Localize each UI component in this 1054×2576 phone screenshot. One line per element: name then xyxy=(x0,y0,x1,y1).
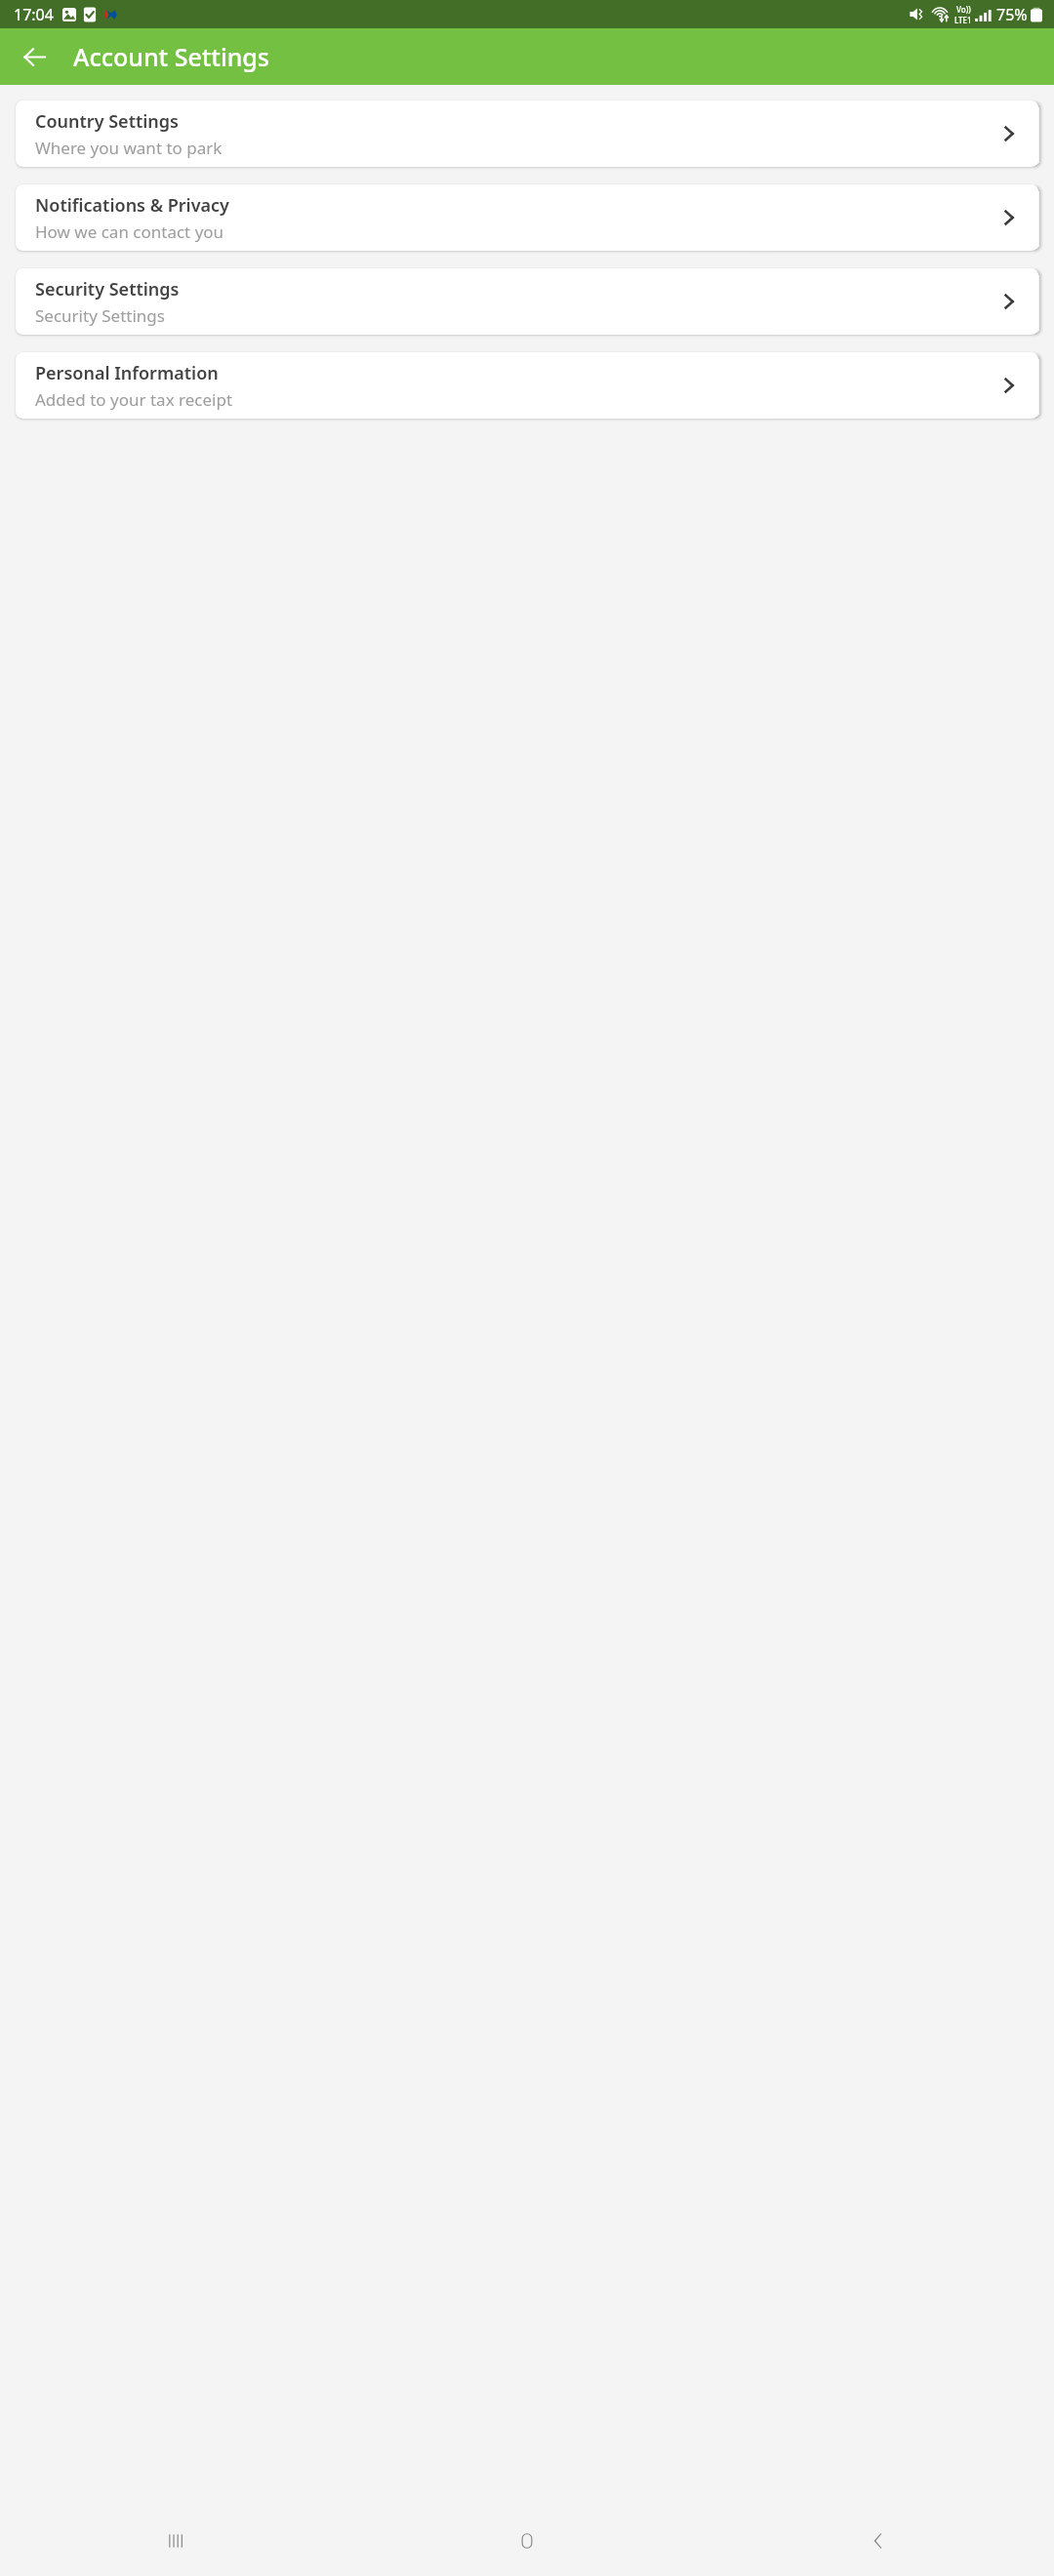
staticText: Security Settings xyxy=(35,304,165,327)
staticText: How we can contact you xyxy=(35,221,224,243)
staticText: Where you want to park xyxy=(35,137,223,159)
button[interactable]: Recents xyxy=(0,2506,351,2576)
staticText: 17:04 xyxy=(14,4,54,25)
button[interactable]: Notifications & Privacy xyxy=(16,184,1038,251)
button[interactable]: Home xyxy=(351,2506,703,2576)
button[interactable]: Back xyxy=(13,35,56,78)
staticText: 75% xyxy=(996,4,1028,25)
staticText: LTE1 xyxy=(954,15,972,25)
button[interactable]: Country Settings xyxy=(16,101,1038,167)
staticText: Personal Information xyxy=(35,361,219,385)
staticText: Added to your tax receipt xyxy=(35,388,233,411)
button[interactable]: Personal Information xyxy=(16,352,1038,419)
staticText: Security Settings xyxy=(35,277,180,302)
staticText: Country Settings xyxy=(35,109,179,134)
staticText: Account Settings xyxy=(73,40,269,73)
staticText: Vo)) xyxy=(956,4,971,15)
staticText: Notifications & Privacy xyxy=(35,193,229,218)
button[interactable]: Security Settings xyxy=(16,268,1038,335)
